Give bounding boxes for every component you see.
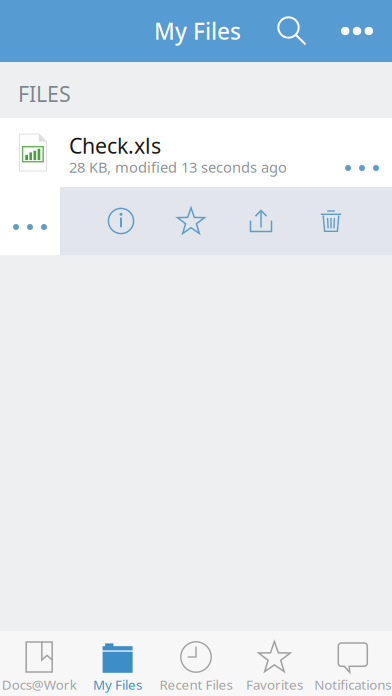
button[interactable]: Share bbox=[226, 187, 296, 255]
button[interactable]: Notifications bbox=[314, 631, 392, 696]
staticText: Docs@Work bbox=[2, 676, 77, 693]
staticText: Notifications bbox=[314, 676, 391, 693]
button[interactable]: Recent Files bbox=[157, 631, 235, 696]
button[interactable]: Favorites bbox=[235, 631, 314, 696]
button[interactable]: More file actions bbox=[0, 187, 60, 255]
button[interactable]: Details bbox=[86, 187, 156, 255]
staticText: Favorites bbox=[246, 676, 303, 693]
staticText: 28 KB, modified 13 seconds ago bbox=[69, 157, 287, 177]
button[interactable]: More options bbox=[335, 9, 379, 53]
button[interactable]: Delete bbox=[296, 187, 366, 255]
button[interactable]: Favorite bbox=[156, 187, 226, 255]
staticText: My Files bbox=[154, 16, 241, 46]
staticText: FILES bbox=[18, 80, 71, 108]
button[interactable]: Search bbox=[270, 9, 314, 53]
staticText: Recent Files bbox=[159, 676, 232, 693]
staticText: My Files bbox=[93, 676, 142, 693]
button[interactable]: Check.xls bbox=[0, 118, 392, 187]
button[interactable]: My Files bbox=[78, 631, 157, 696]
staticText: Check.xls bbox=[69, 131, 161, 160]
button[interactable]: Docs@Work bbox=[0, 631, 78, 696]
